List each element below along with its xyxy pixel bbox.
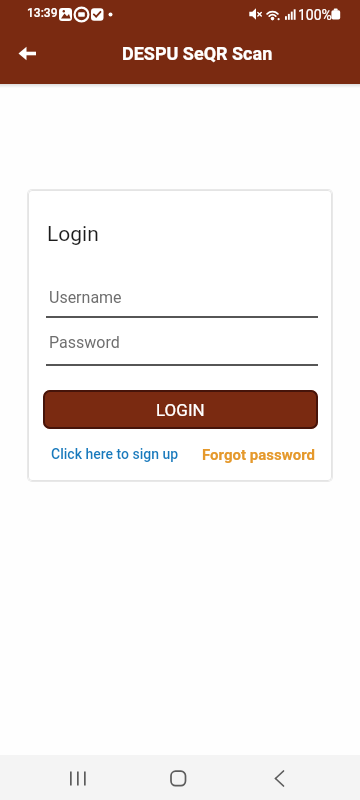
staticText: 13:39	[27, 6, 58, 20]
staticText: Forgot password	[202, 446, 315, 464]
button[interactable]: LOGIN	[43, 390, 318, 429]
staticText: 100%	[298, 7, 332, 23]
staticText: Password	[49, 333, 120, 352]
staticText: Click here to sign up	[51, 446, 179, 462]
staticText: Login	[47, 222, 99, 247]
staticText: DESPU SeQR Scan	[122, 43, 273, 64]
button[interactable]	[10, 36, 44, 70]
button[interactable]: Forgot password	[202, 446, 315, 464]
button[interactable]	[120, 755, 240, 800]
button[interactable]	[240, 755, 360, 800]
staticText: Username	[49, 288, 122, 307]
button[interactable]	[0, 755, 120, 800]
staticText: LOGIN	[156, 400, 205, 420]
button[interactable]: Click here to sign up	[51, 446, 179, 462]
